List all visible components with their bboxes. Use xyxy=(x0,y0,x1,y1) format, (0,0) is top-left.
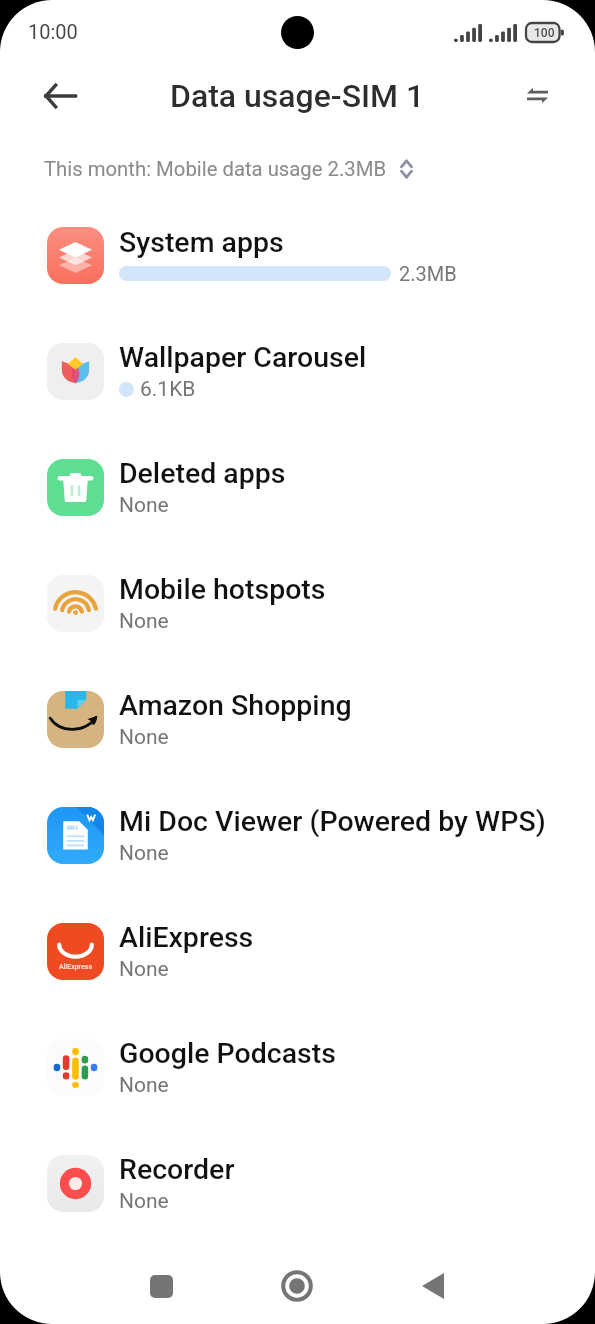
button[interactable]: Amazon Shopping xyxy=(0,661,595,777)
staticText: AliExpress xyxy=(119,921,254,954)
button[interactable]: System apps xyxy=(0,197,595,313)
staticText: Recorder xyxy=(119,1153,235,1186)
button[interactable]: Switch SIM xyxy=(513,71,561,119)
staticText: Deleted apps xyxy=(119,457,286,490)
staticText: Data usage-SIM 1 xyxy=(170,77,425,115)
button[interactable]: Deleted apps xyxy=(0,429,595,545)
button[interactable]: This month: Mobile data usage 2.3MB xyxy=(0,146,595,192)
staticText: AliExpress xyxy=(59,963,92,971)
staticText: None xyxy=(119,493,169,518)
staticText: 6.1KB xyxy=(140,377,196,402)
staticText: Mi Doc Viewer (Powered by WPS) xyxy=(119,805,546,838)
staticText: System apps xyxy=(119,226,284,259)
button[interactable]: Recents xyxy=(93,1248,229,1324)
button[interactable]: AliExpress xyxy=(0,893,595,1009)
button[interactable]: Recorder xyxy=(0,1125,595,1241)
staticText: None xyxy=(119,725,169,750)
staticText: None xyxy=(119,1073,169,1098)
button[interactable]: Home xyxy=(229,1248,365,1324)
staticText: Amazon Shopping xyxy=(119,689,352,722)
button[interactable]: Mi Doc Viewer (Powered by WPS) xyxy=(0,777,595,893)
staticText: None xyxy=(119,841,169,866)
staticText: None xyxy=(119,1189,169,1214)
button[interactable]: Back xyxy=(365,1248,501,1324)
staticText: Mobile hotspots xyxy=(119,573,326,606)
button[interactable]: Back xyxy=(36,72,84,120)
staticText: This month: Mobile data usage 2.3MB xyxy=(44,157,387,181)
button[interactable]: Wallpaper Carousel xyxy=(0,313,595,429)
staticText: 2.3MB xyxy=(399,262,457,285)
staticText: Wallpaper Carousel xyxy=(119,341,367,374)
staticText: 10:00 xyxy=(28,20,78,43)
staticText: None xyxy=(119,609,169,634)
staticText: None xyxy=(119,957,169,982)
button[interactable]: Google Podcasts xyxy=(0,1009,595,1125)
button[interactable]: Mobile hotspots xyxy=(0,545,595,661)
staticText: 100 xyxy=(534,26,555,40)
staticText: Google Podcasts xyxy=(119,1037,336,1070)
